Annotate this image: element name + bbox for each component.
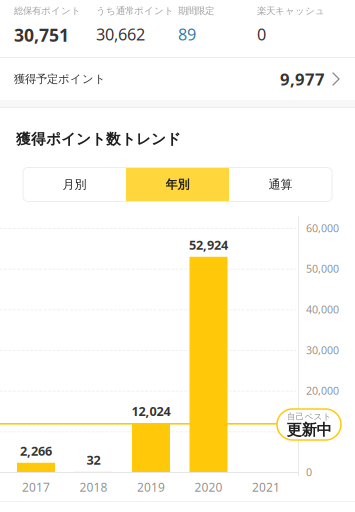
staticText: 2,266 [20, 442, 52, 459]
staticText: 52,924 [189, 236, 228, 253]
staticText: 9,977 [280, 68, 325, 90]
button[interactable]: 年別 [126, 167, 229, 201]
staticText: 60,000 [306, 221, 339, 235]
staticText: 自己ベスト [286, 411, 331, 422]
staticText: 89 [178, 23, 196, 45]
staticText: 期間限定 [178, 5, 214, 17]
staticText: 40,000 [306, 302, 339, 317]
staticText: 30,000 [306, 343, 339, 357]
staticText: 0 [306, 465, 312, 479]
button[interactable]: 通算 [229, 167, 332, 201]
staticText: 更新中 [286, 420, 331, 440]
staticText: 2020 [194, 479, 222, 495]
staticText: 50,000 [306, 261, 339, 276]
staticText: 30,751 [14, 23, 69, 47]
staticText: 10,000 [306, 424, 339, 439]
staticText: 楽天キャッシュ [257, 5, 325, 17]
staticText: 月別 [62, 177, 86, 192]
staticText: 総保有ポイント [14, 5, 81, 17]
staticText: 獲得予定ポイント [14, 72, 106, 86]
staticText: 2017 [22, 479, 50, 495]
staticText: 20,000 [306, 383, 339, 398]
staticText: 通算 [268, 177, 292, 192]
staticText: 年別 [165, 177, 189, 192]
staticText: 2018 [79, 479, 107, 495]
button[interactable]: 月別 [23, 167, 126, 201]
staticText: 30,662 [96, 23, 145, 45]
staticText: 32 [86, 451, 100, 468]
button[interactable]: 獲得予定ポイント [0, 58, 355, 100]
staticText: 0 [257, 23, 266, 45]
staticText: 2019 [137, 479, 165, 495]
staticText: 12,024 [131, 402, 170, 420]
staticText: 2021 [252, 479, 280, 495]
staticText: 獲得ポイント数トレンド [16, 130, 181, 148]
staticText: うち通常ポイント [96, 5, 174, 17]
